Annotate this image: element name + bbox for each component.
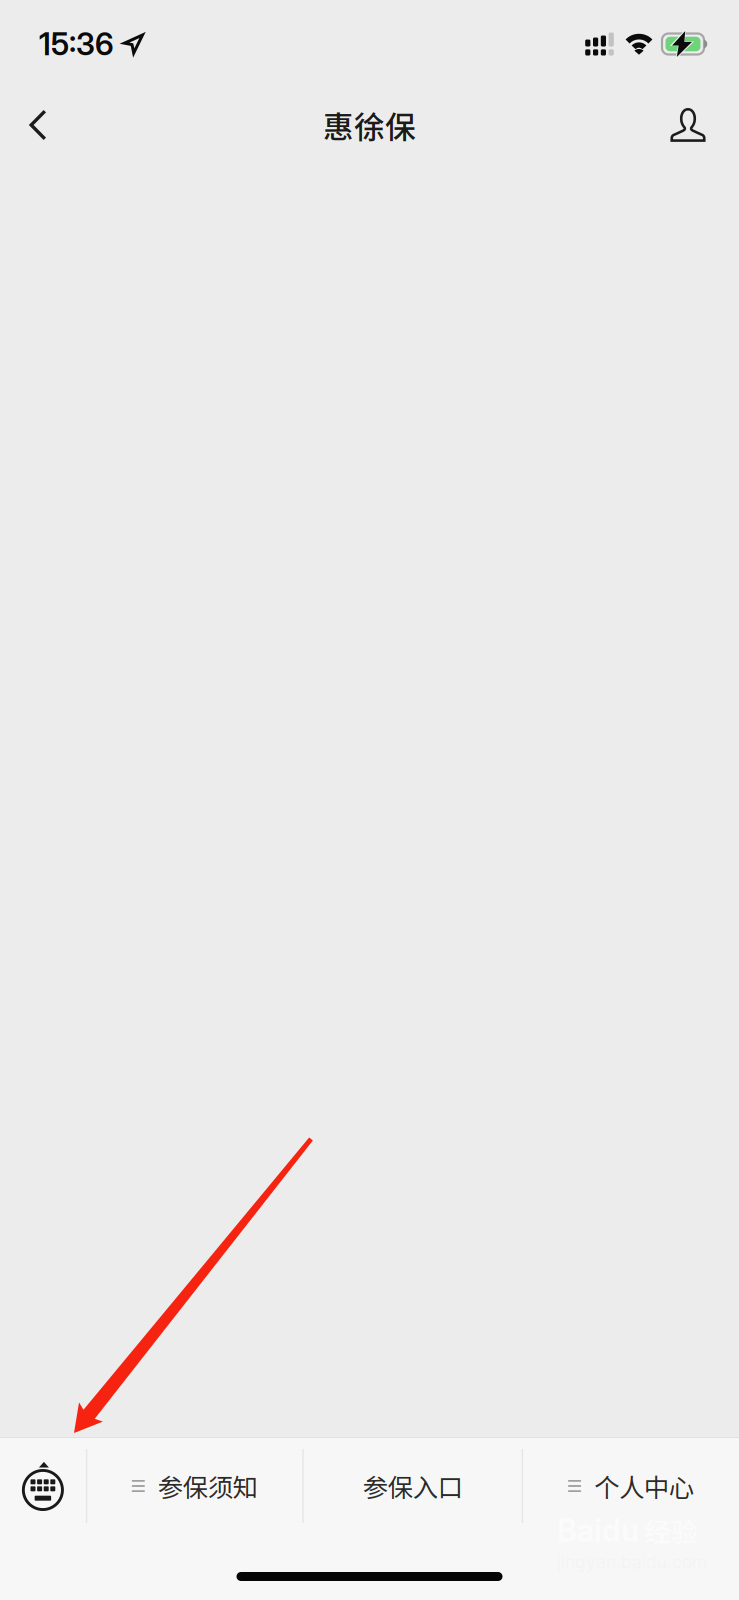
staticText: 参保入口 (363, 1468, 463, 1504)
staticText: 个人中心 (594, 1468, 694, 1504)
button[interactable]: 个人中心 (523, 1438, 739, 1534)
button[interactable]: Back (0, 88, 76, 162)
button[interactable]: 参保入口 (304, 1438, 522, 1534)
button[interactable]: Profile (650, 88, 726, 162)
staticText: 参保须知 (158, 1468, 258, 1504)
button[interactable]: 参保须知 (87, 1438, 302, 1534)
staticText: 15:36 (39, 25, 114, 62)
staticText: 惠徐保 (323, 103, 416, 147)
button[interactable]: Keyboard (0, 1438, 86, 1534)
